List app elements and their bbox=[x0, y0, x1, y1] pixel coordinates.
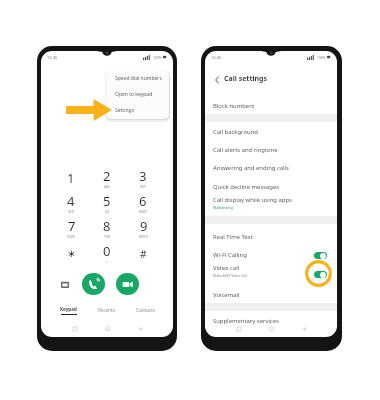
button[interactable]: 8 bbox=[89, 216, 125, 241]
button[interactable]: Recent apps bbox=[69, 323, 80, 334]
staticText: 6 bbox=[139, 192, 147, 210]
button[interactable]: Speed dial numbers bbox=[106, 70, 169, 86]
staticText: TUV bbox=[104, 235, 111, 239]
button[interactable]: Answering and ending calls bbox=[205, 159, 337, 177]
button[interactable]: Recent apps bbox=[233, 323, 244, 334]
staticText: Call alerts and ringtone bbox=[213, 146, 278, 154]
button[interactable]: Keypad options bbox=[59, 279, 70, 290]
button[interactable]: 5 bbox=[89, 191, 125, 216]
staticText: Multitasking bbox=[213, 205, 233, 210]
button[interactable]: Call alerts and ringtone bbox=[205, 141, 337, 159]
button[interactable]: Wi-Fi Calling switch bbox=[314, 252, 327, 259]
staticText: Answering and ending calls bbox=[213, 164, 289, 172]
staticText: Call settings bbox=[224, 74, 268, 84]
staticText: Video call bbox=[213, 264, 240, 272]
staticText: 12:45 bbox=[211, 55, 222, 60]
button[interactable]: 7 bbox=[53, 216, 89, 241]
staticText: JKL bbox=[105, 210, 110, 214]
staticText: 100% bbox=[317, 55, 326, 60]
staticText: 3 bbox=[139, 167, 147, 185]
button[interactable]: Contacts bbox=[126, 304, 165, 316]
button[interactable]: Settings bbox=[106, 102, 169, 118]
staticText: Call background bbox=[213, 128, 258, 136]
button[interactable]: Home bbox=[266, 323, 277, 334]
staticText: WXYZ bbox=[139, 235, 148, 239]
staticText: + bbox=[106, 260, 108, 264]
button[interactable]: Navigate up bbox=[211, 74, 222, 85]
staticText: ABC bbox=[104, 185, 111, 189]
button[interactable]: Video call bbox=[116, 273, 139, 295]
button[interactable]: 3 bbox=[125, 166, 161, 191]
button[interactable]: Call display while using apps bbox=[205, 194, 337, 212]
staticText: 1 bbox=[67, 169, 75, 187]
staticText: GHI bbox=[68, 210, 74, 214]
staticText: Call display while using apps bbox=[213, 196, 292, 204]
button[interactable]: Video call bbox=[205, 262, 337, 280]
button[interactable]: Quick decline messages bbox=[205, 178, 337, 196]
staticText: Open to keypad bbox=[115, 91, 153, 98]
button[interactable]: 1 bbox=[53, 166, 89, 191]
button[interactable]: Call bbox=[82, 273, 105, 295]
staticText: Keypad bbox=[60, 306, 77, 312]
staticText: 0 bbox=[103, 242, 111, 260]
button[interactable]: Call background bbox=[205, 123, 337, 141]
staticText: Quick decline messages bbox=[213, 183, 280, 191]
staticText: PQRS bbox=[67, 235, 76, 239]
button[interactable]: 6 bbox=[125, 191, 161, 216]
button[interactable]: Speed dial numbers bbox=[106, 70, 169, 119]
button[interactable]: 9 bbox=[125, 216, 161, 241]
button[interactable]: Voicemail bbox=[205, 286, 337, 304]
button[interactable]: Wi-Fi Calling bbox=[205, 246, 337, 264]
staticText: Speed dial numbers bbox=[115, 75, 162, 82]
staticText: 8 bbox=[103, 217, 111, 235]
staticText: DEF bbox=[140, 185, 146, 189]
button[interactable]: # bbox=[125, 241, 161, 266]
staticText: Recents bbox=[98, 307, 115, 313]
button[interactable]: Recents bbox=[87, 304, 126, 316]
button[interactable]: Real Time Text bbox=[205, 228, 337, 246]
staticText: Voicemail bbox=[213, 291, 240, 299]
button[interactable]: Home bbox=[102, 323, 113, 334]
staticText: MNO bbox=[139, 210, 147, 214]
button[interactable]: 2 bbox=[89, 166, 125, 191]
staticText: Make AT&T Video Call bbox=[213, 273, 248, 278]
staticText: Wi-Fi Calling bbox=[213, 251, 247, 259]
staticText: 2 bbox=[103, 167, 111, 185]
staticText: Real Time Text bbox=[213, 233, 253, 241]
button[interactable]: 4 bbox=[53, 191, 89, 216]
staticText: # bbox=[140, 247, 147, 261]
button[interactable]: Video call switch bbox=[314, 271, 327, 278]
staticText: 4 bbox=[67, 192, 75, 210]
staticText: 9 bbox=[140, 217, 148, 235]
button[interactable]: 0 bbox=[89, 241, 125, 266]
staticText: Block numbers bbox=[213, 102, 255, 110]
button[interactable]: Open to keypad bbox=[106, 86, 169, 102]
staticText: ∗ bbox=[67, 248, 76, 260]
button[interactable]: Block numbers bbox=[205, 97, 337, 115]
staticText: Settings bbox=[115, 107, 135, 114]
button[interactable]: Keypad bbox=[49, 304, 87, 316]
staticText: 7 bbox=[68, 217, 76, 235]
button[interactable]: Back bbox=[298, 323, 309, 334]
button[interactable]: ∗ bbox=[53, 241, 89, 266]
button[interactable]: Supplementary services bbox=[205, 312, 337, 330]
staticText: 100% bbox=[153, 55, 162, 60]
staticText: Contacts bbox=[136, 307, 155, 313]
staticText: 5 bbox=[103, 192, 111, 210]
button[interactable]: Back bbox=[134, 323, 145, 334]
staticText: Supplementary services bbox=[213, 317, 279, 325]
staticText: 12:45 bbox=[47, 55, 58, 60]
